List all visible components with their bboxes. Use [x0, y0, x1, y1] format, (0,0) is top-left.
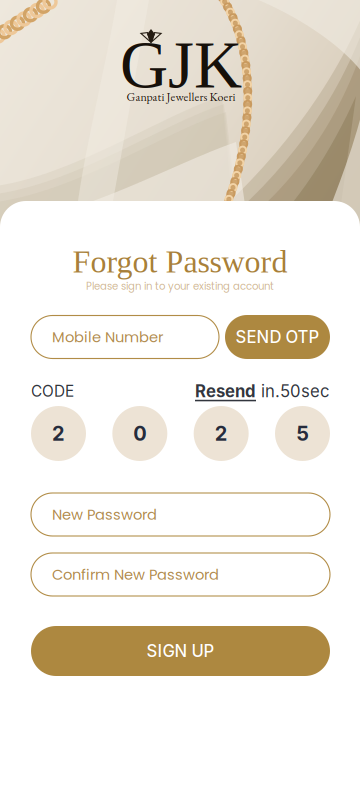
staticText: New Password	[52, 504, 157, 525]
staticText: 2	[215, 421, 228, 446]
staticText: in.50sec	[256, 381, 330, 401]
staticText: Forgot Password	[72, 244, 287, 279]
button[interactable]: SIGN UP	[31, 626, 330, 676]
staticText: SEND OTP	[235, 327, 319, 347]
staticText: GJK	[120, 28, 242, 102]
staticText: 5	[296, 421, 308, 446]
staticText: 2	[52, 421, 65, 446]
staticText: SIGN UP	[146, 641, 214, 661]
button[interactable]: SEND OTP	[225, 315, 330, 359]
staticText: Please sign in to your existing account	[86, 279, 274, 293]
staticText: Ganpati Jewellers Koeri	[126, 89, 235, 105]
button[interactable]: Resend	[195, 381, 256, 401]
staticText: Confirm New Password	[52, 564, 219, 585]
staticText: CODE	[31, 382, 74, 400]
staticText: Mobile Number	[52, 327, 163, 347]
staticText: Resend	[195, 381, 256, 401]
staticText: 0	[133, 421, 146, 446]
